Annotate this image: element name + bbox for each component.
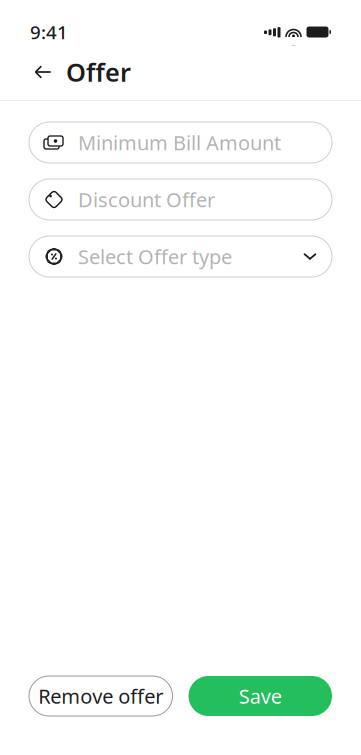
button[interactable]: Select Offer type bbox=[29, 236, 332, 277]
button[interactable]: Remove offer bbox=[29, 676, 172, 716]
button[interactable]: Discount Offer bbox=[29, 179, 332, 220]
staticText: Remove offer bbox=[38, 683, 163, 709]
staticText: Save bbox=[239, 683, 282, 709]
staticText: Minimum Bill Amount bbox=[78, 129, 281, 156]
staticText: Discount Offer bbox=[78, 186, 215, 213]
button[interactable]: Back bbox=[30, 59, 56, 85]
button[interactable]: Minimum Bill Amount bbox=[29, 122, 332, 163]
staticText: 9:41 bbox=[30, 20, 68, 44]
button[interactable]: Save bbox=[188, 676, 332, 716]
staticText: Select Offer type bbox=[78, 243, 232, 270]
staticText: Offer bbox=[66, 55, 131, 89]
